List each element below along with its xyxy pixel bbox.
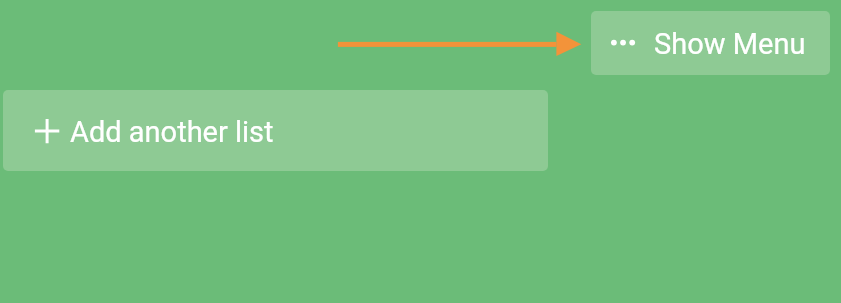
button[interactable]: More options bbox=[591, 11, 830, 75]
staticText: Show Menu bbox=[654, 27, 806, 61]
button[interactable]: Add another list bbox=[3, 90, 548, 171]
staticText: Add another list bbox=[70, 115, 274, 149]
other: More options bbox=[611, 39, 635, 47]
